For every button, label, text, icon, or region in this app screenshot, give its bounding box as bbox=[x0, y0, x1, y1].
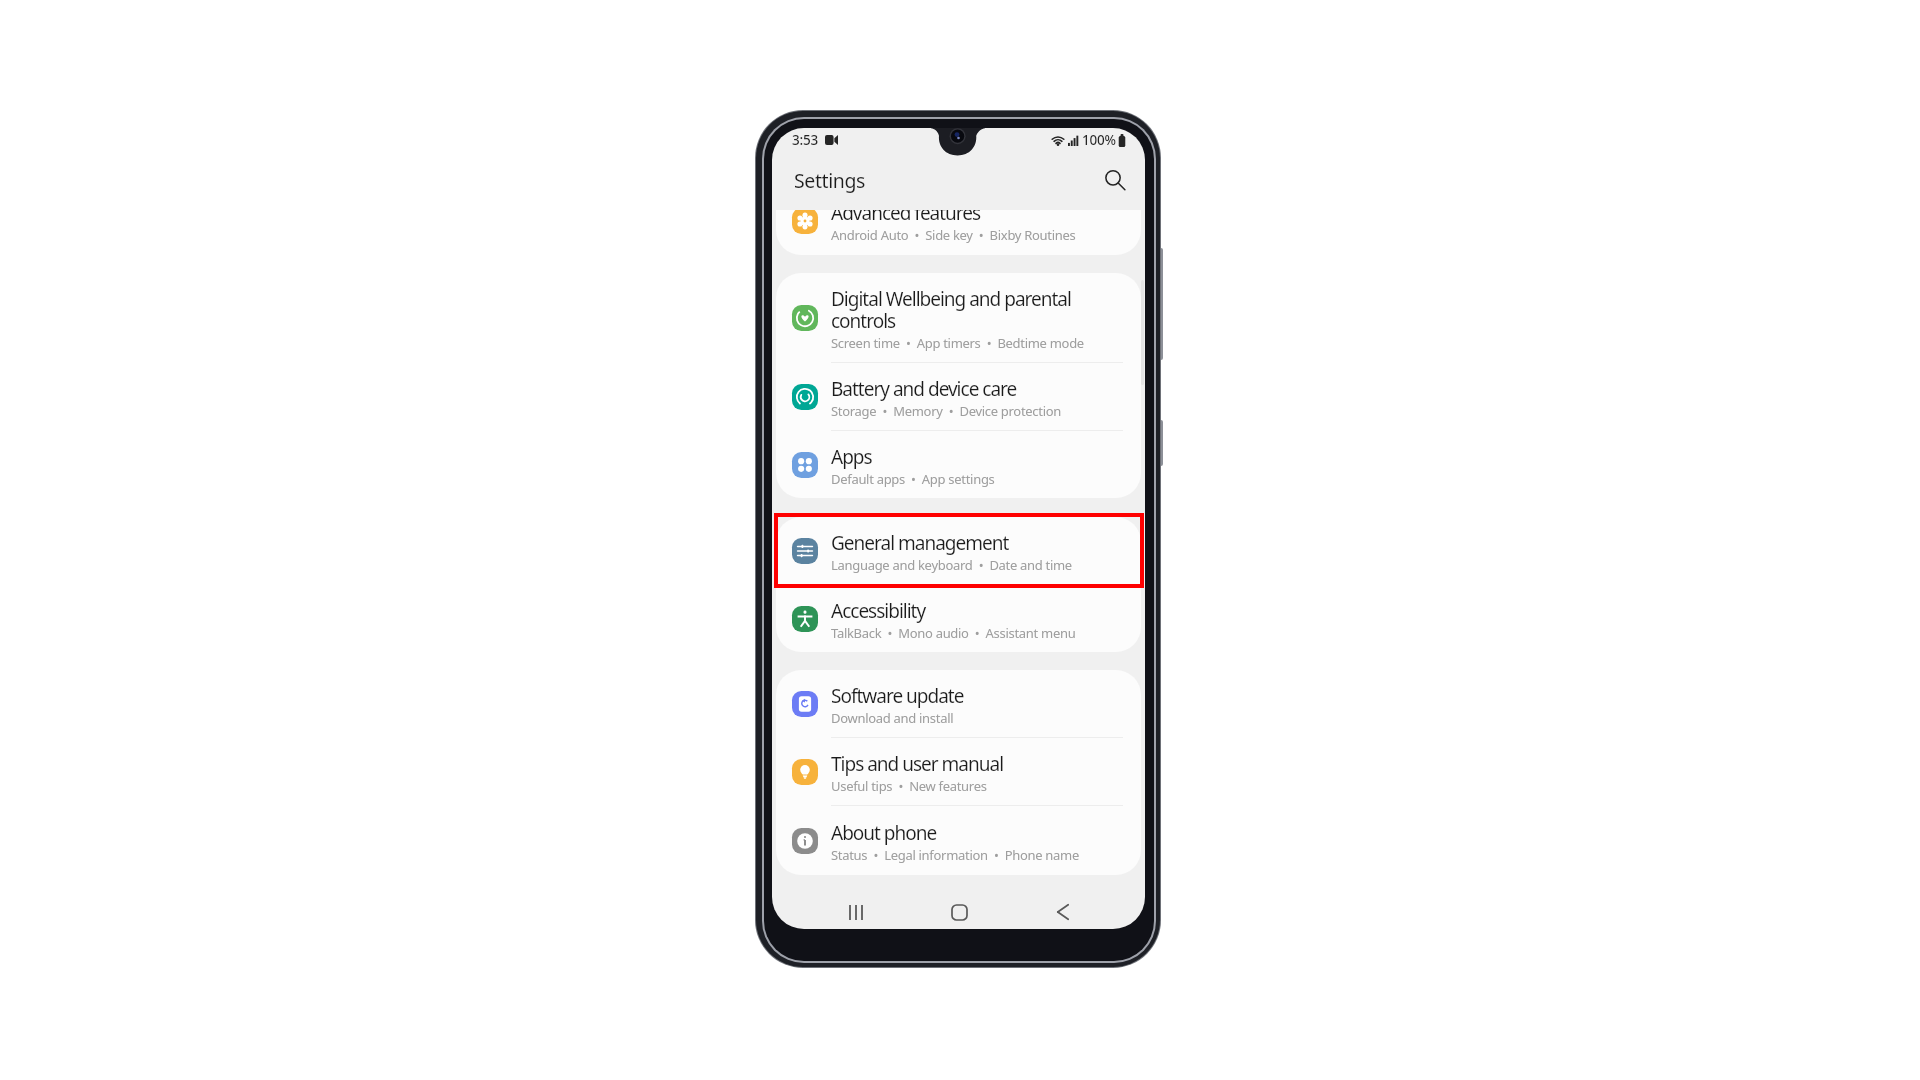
staticText: Tips and user manual bbox=[831, 751, 1004, 777]
staticText: Accessibility bbox=[831, 598, 926, 624]
button[interactable]: Accessibility bbox=[776, 585, 1141, 652]
staticText: Digital Wellbeing and parental controls bbox=[831, 286, 1127, 334]
button[interactable]: Battery and device care bbox=[776, 363, 1141, 431]
staticText: Storage • Memory • Device protection bbox=[831, 402, 1062, 420]
staticText: Settings bbox=[794, 167, 865, 194]
button[interactable]: Tips and user manual bbox=[776, 738, 1141, 806]
button[interactable]: About phone bbox=[776, 806, 1141, 875]
button[interactable]: Software update bbox=[776, 670, 1141, 738]
staticText: Screen time • App timers • Bedtime mode bbox=[831, 334, 1084, 352]
staticText: Download and install bbox=[831, 709, 954, 727]
staticText: Apps bbox=[831, 444, 872, 470]
staticText: Battery and device care bbox=[831, 376, 1017, 402]
button[interactable]: General management bbox=[776, 517, 1141, 585]
button[interactable]: Back bbox=[1042, 895, 1084, 929]
staticText: Software update bbox=[831, 683, 964, 709]
staticText: 100% bbox=[1082, 131, 1116, 149]
staticText: TalkBack • Mono audio • Assistant menu bbox=[831, 624, 1076, 642]
staticText: Default apps • App settings bbox=[831, 470, 995, 488]
button[interactable]: Advanced features bbox=[776, 210, 1141, 255]
staticText: Advanced features bbox=[831, 210, 981, 226]
staticText: Useful tips • New features bbox=[831, 777, 987, 795]
staticText: General management bbox=[831, 530, 1009, 556]
staticText: Language and keyboard • Date and time bbox=[831, 556, 1072, 574]
staticText: About phone bbox=[831, 820, 937, 846]
button[interactable]: Recents bbox=[835, 895, 877, 929]
staticText: 3:53 bbox=[792, 131, 819, 149]
button[interactable]: Search bbox=[1096, 161, 1134, 199]
button[interactable]: Apps bbox=[776, 431, 1141, 498]
staticText: Status • Legal information • Phone name bbox=[831, 846, 1079, 864]
button[interactable]: Home bbox=[938, 895, 980, 929]
button[interactable]: Digital Wellbeing and parental controls bbox=[776, 273, 1141, 363]
staticText: Android Auto • Side key • Bixby Routines bbox=[831, 226, 1076, 244]
